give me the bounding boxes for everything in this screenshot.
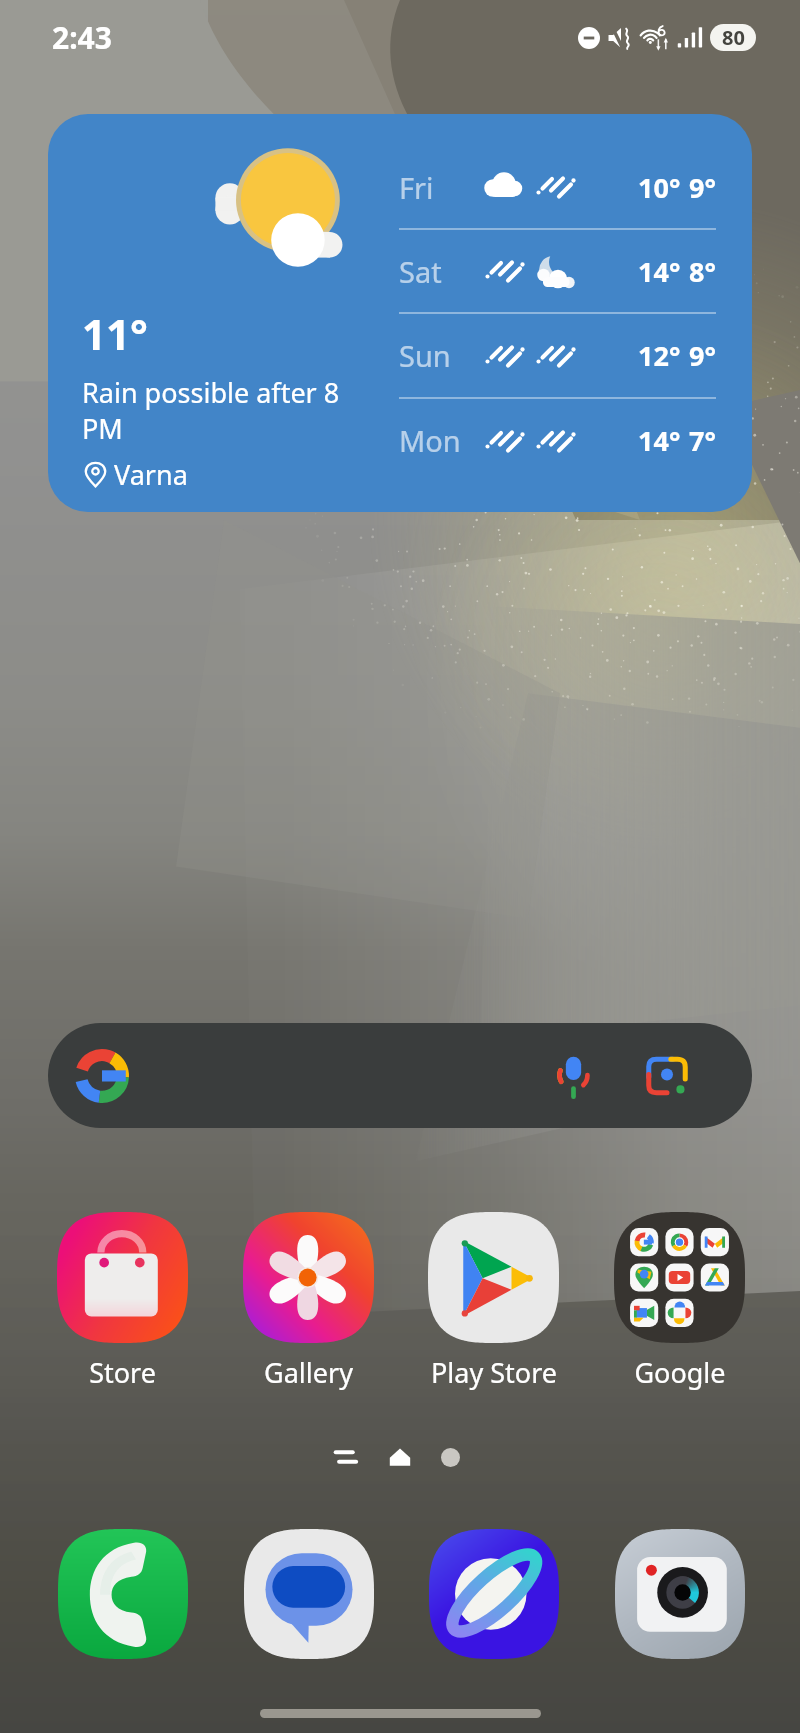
staticText: Sun: [399, 336, 478, 375]
staticText: 8°: [689, 253, 716, 290]
staticText: Fri: [399, 168, 478, 207]
button[interactable]: 11°: [48, 114, 752, 512]
staticText: 11°: [82, 305, 148, 362]
staticText: Rain possible after 8 PM: [82, 374, 348, 447]
staticText: 9°: [689, 169, 716, 206]
button[interactable]: Play Store: [401, 1212, 586, 1391]
button[interactable]: Google Lens: [635, 1044, 699, 1108]
button[interactable]: Internet: [401, 1528, 586, 1659]
staticText: 12°: [638, 337, 681, 374]
button[interactable]: App list: [333, 1440, 367, 1474]
button[interactable]: Fri: [399, 146, 716, 228]
staticText: Google: [634, 1354, 726, 1391]
staticText: 14°: [638, 253, 681, 290]
button[interactable]: Camera: [587, 1528, 772, 1659]
button[interactable]: Voice search: [541, 1044, 605, 1108]
button[interactable]: Gallery: [216, 1212, 401, 1391]
staticText: 9°: [689, 337, 716, 374]
button[interactable]: Voice search: [48, 1023, 752, 1128]
staticText: 7°: [689, 422, 716, 459]
button[interactable]: Messages: [216, 1528, 401, 1659]
button[interactable]: Google: [587, 1212, 772, 1391]
staticText: 2:43: [52, 17, 112, 58]
button[interactable]: Mon: [399, 399, 716, 482]
button[interactable]: Page 3: [433, 1440, 467, 1474]
staticText: Store: [89, 1354, 156, 1391]
staticText: 14°: [638, 422, 681, 459]
button[interactable]: Phone: [30, 1528, 215, 1659]
staticText: Mon: [399, 421, 478, 460]
button[interactable]: Home: [383, 1440, 417, 1474]
staticText: 80: [722, 24, 745, 51]
staticText: Varna: [114, 456, 188, 493]
button[interactable]: Store: [30, 1212, 215, 1391]
staticText: Sat: [399, 252, 478, 291]
staticText: Gallery: [264, 1354, 353, 1391]
staticText: Play Store: [431, 1354, 557, 1391]
staticText: 10°: [638, 169, 681, 206]
button[interactable]: Sun: [399, 314, 716, 397]
button[interactable]: Sat: [399, 230, 716, 312]
